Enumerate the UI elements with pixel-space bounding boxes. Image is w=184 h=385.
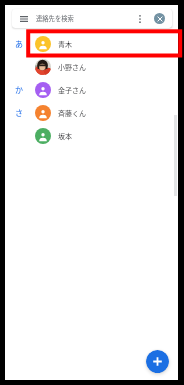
staticText: さ [15,107,23,119]
button[interactable]: Account [154,13,165,24]
staticText: 小野さん [58,62,86,72]
staticText: あ [15,38,23,50]
button[interactable]: あ [5,32,178,55]
button[interactable]: さ [5,101,178,124]
button[interactable]: か [5,78,178,101]
staticText: 連絡先を検索 [36,14,74,23]
staticText: 金子さん [58,85,86,95]
staticText: か [15,84,23,96]
button[interactable]: Create new contact [146,350,169,373]
staticText: 坂本 [58,131,72,141]
button[interactable]: More options [132,11,147,26]
button[interactable]: 小野さん [5,55,178,78]
staticText: 斉藤くん [58,108,86,118]
button[interactable]: Open navigation drawer [12,9,172,28]
button[interactable]: 坂本 [5,124,178,147]
button[interactable]: Open navigation drawer [16,11,32,27]
staticText: 青木 [58,39,72,49]
